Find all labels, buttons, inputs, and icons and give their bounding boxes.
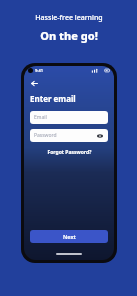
button[interactable]: Next: [30, 230, 108, 243]
staticText: Hassle-free learning: [35, 13, 103, 23]
button[interactable]: Back: [29, 78, 40, 89]
staticText: Password: [34, 132, 57, 139]
button[interactable]: Password: [30, 129, 108, 142]
button[interactable]: Email: [30, 111, 108, 124]
staticText: Forgot Password?: [47, 149, 92, 156]
button[interactable]: Show password: [96, 132, 104, 140]
staticText: Enter email: [30, 93, 76, 104]
staticText: On the go!: [40, 28, 98, 43]
button[interactable]: Forgot Password?: [44, 148, 95, 157]
staticText: Email: [34, 114, 47, 121]
staticText: Next: [63, 233, 76, 240]
staticText: 9:41: [35, 68, 43, 73]
